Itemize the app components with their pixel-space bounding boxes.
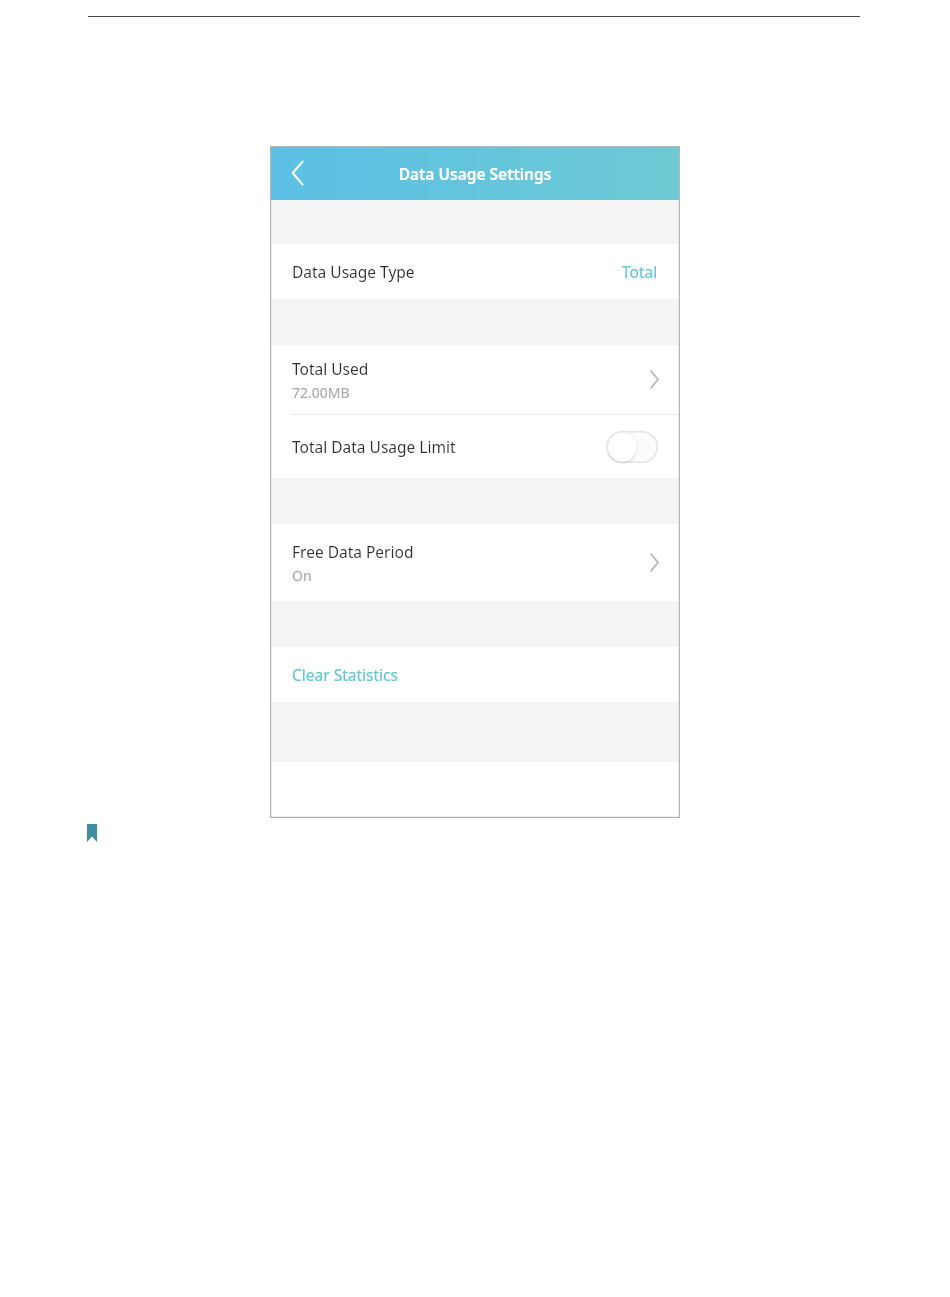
staticText: Data Usage Type <box>292 261 415 282</box>
staticText: Clear Statistics <box>292 664 398 685</box>
button[interactable]: Total Used <box>270 345 680 414</box>
staticText: Total Data Usage Limit <box>292 436 456 457</box>
button[interactable]: Free Data Period <box>270 524 680 601</box>
button[interactable]: Clear Statistics <box>270 647 680 702</box>
button[interactable]: Data Usage Type <box>270 244 680 299</box>
staticText: Data Usage Settings <box>270 163 680 184</box>
staticText: Total <box>622 261 658 282</box>
staticText: Free Data Period <box>292 541 414 562</box>
staticText: 72.00MB <box>292 383 350 402</box>
staticText: Total Used <box>292 358 369 379</box>
button[interactable]: Total Data Usage Limit toggle <box>606 431 658 463</box>
staticText: On <box>292 566 312 585</box>
button[interactable]: Back <box>270 146 326 200</box>
